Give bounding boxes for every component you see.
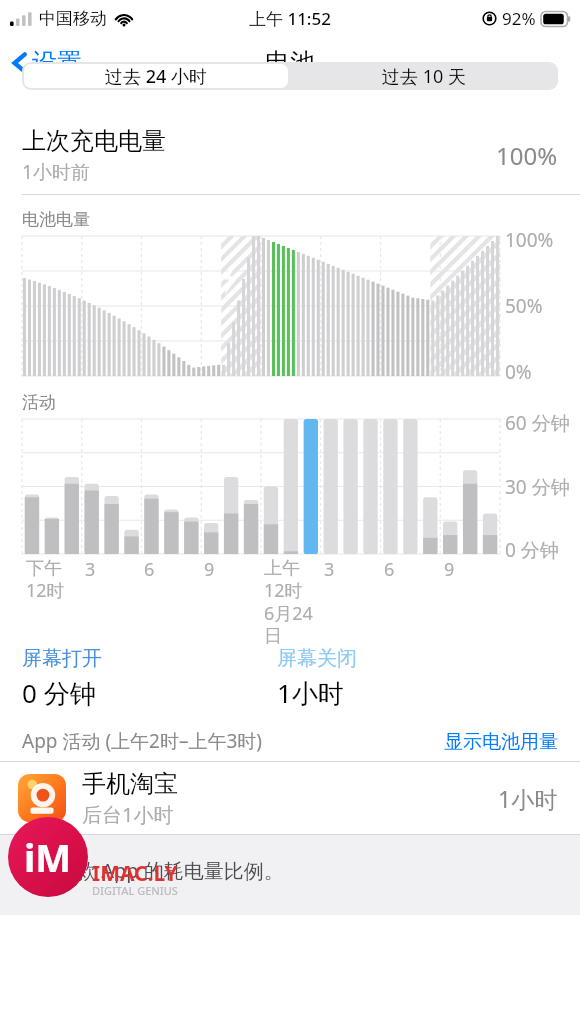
staticText: 上次充电电量 [22, 126, 166, 156]
button[interactable]: 手机淘宝 [0, 762, 580, 834]
staticText: 活动 [22, 392, 56, 413]
staticText: 3 [324, 557, 335, 582]
staticText: App 活动 (上午2时–上午3时) [22, 728, 444, 754]
button[interactable]: 显示电池用量 [444, 730, 558, 761]
staticText: 电池 [265, 47, 315, 78]
staticText: 中国移动 [39, 8, 107, 29]
staticText: 1小时 [277, 675, 344, 711]
staticText: 下午 12时 [26, 557, 65, 603]
staticText: 6 [144, 557, 155, 582]
staticText: 9 [444, 557, 455, 582]
staticText: 显示电池用量 [444, 730, 558, 754]
staticText: 上午 12时 6月24日 [264, 557, 320, 646]
staticText: 92% [502, 7, 536, 30]
staticText: 过去 10 天 [382, 64, 466, 89]
staticText: 6 [384, 557, 395, 582]
button[interactable]: 上次充电电量 [0, 116, 580, 194]
staticText: 设置 [32, 47, 82, 78]
staticText: 上午 11:52 [249, 7, 331, 30]
staticText: 屏幕打开 [22, 646, 102, 671]
button[interactable]: 设置 [0, 41, 92, 84]
staticText: DIGITAL GENIUS [92, 883, 178, 898]
staticText: 0 分钟 [22, 675, 96, 711]
button[interactable]: 过去 10 天 [290, 62, 558, 90]
staticText: 3 [85, 557, 96, 582]
staticText: 50% [505, 293, 543, 319]
staticText: 电池电量 [22, 209, 90, 230]
staticText: 1小时前 [22, 159, 90, 185]
staticText: 手机淘宝 [82, 769, 178, 799]
staticText: 9 [204, 557, 215, 582]
staticText: 0% [505, 359, 532, 385]
staticText: 100% [496, 139, 558, 172]
staticText: IMAC.LY [92, 859, 178, 888]
button[interactable]: 过去 24 小时 [24, 64, 288, 88]
staticText: 60 分钟 [505, 410, 570, 436]
button[interactable]: 屏幕关闭 [277, 646, 558, 711]
button[interactable]: 屏幕打开 [22, 646, 277, 711]
staticText: 0 分钟 [505, 537, 559, 563]
staticText: 1小时 [498, 783, 558, 814]
staticText: iM [24, 831, 72, 883]
staticText: 屏幕关闭 [277, 646, 357, 671]
staticText: 100% [505, 227, 554, 253]
staticText: 30 分钟 [505, 474, 570, 500]
staticText: 过去 24 小时 [105, 64, 207, 88]
staticText: 后台1小时 [82, 801, 174, 828]
staticText: 款 App 的耗电量比例。 [76, 857, 284, 884]
